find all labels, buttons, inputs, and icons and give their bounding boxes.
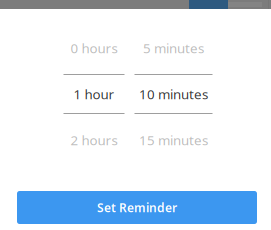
button[interactable]: 15 minutes <box>134 114 212 166</box>
staticText: 5 minutes <box>143 39 204 57</box>
staticText: 1 hour <box>73 85 114 103</box>
staticText: Set Reminder <box>97 199 177 215</box>
button[interactable]: 10 minutes <box>134 75 212 113</box>
staticText: 2 hours <box>70 131 117 149</box>
button[interactable]: 5 minutes <box>134 22 212 74</box>
staticText: 0 hours <box>70 39 117 57</box>
button[interactable]: 0 hours <box>63 22 124 74</box>
button[interactable]: Set Reminder <box>17 191 257 224</box>
button[interactable]: 2 hours <box>63 114 124 166</box>
staticText: 10 minutes <box>139 85 208 103</box>
button[interactable]: 1 hour <box>63 75 124 113</box>
staticText: 15 minutes <box>139 131 208 149</box>
